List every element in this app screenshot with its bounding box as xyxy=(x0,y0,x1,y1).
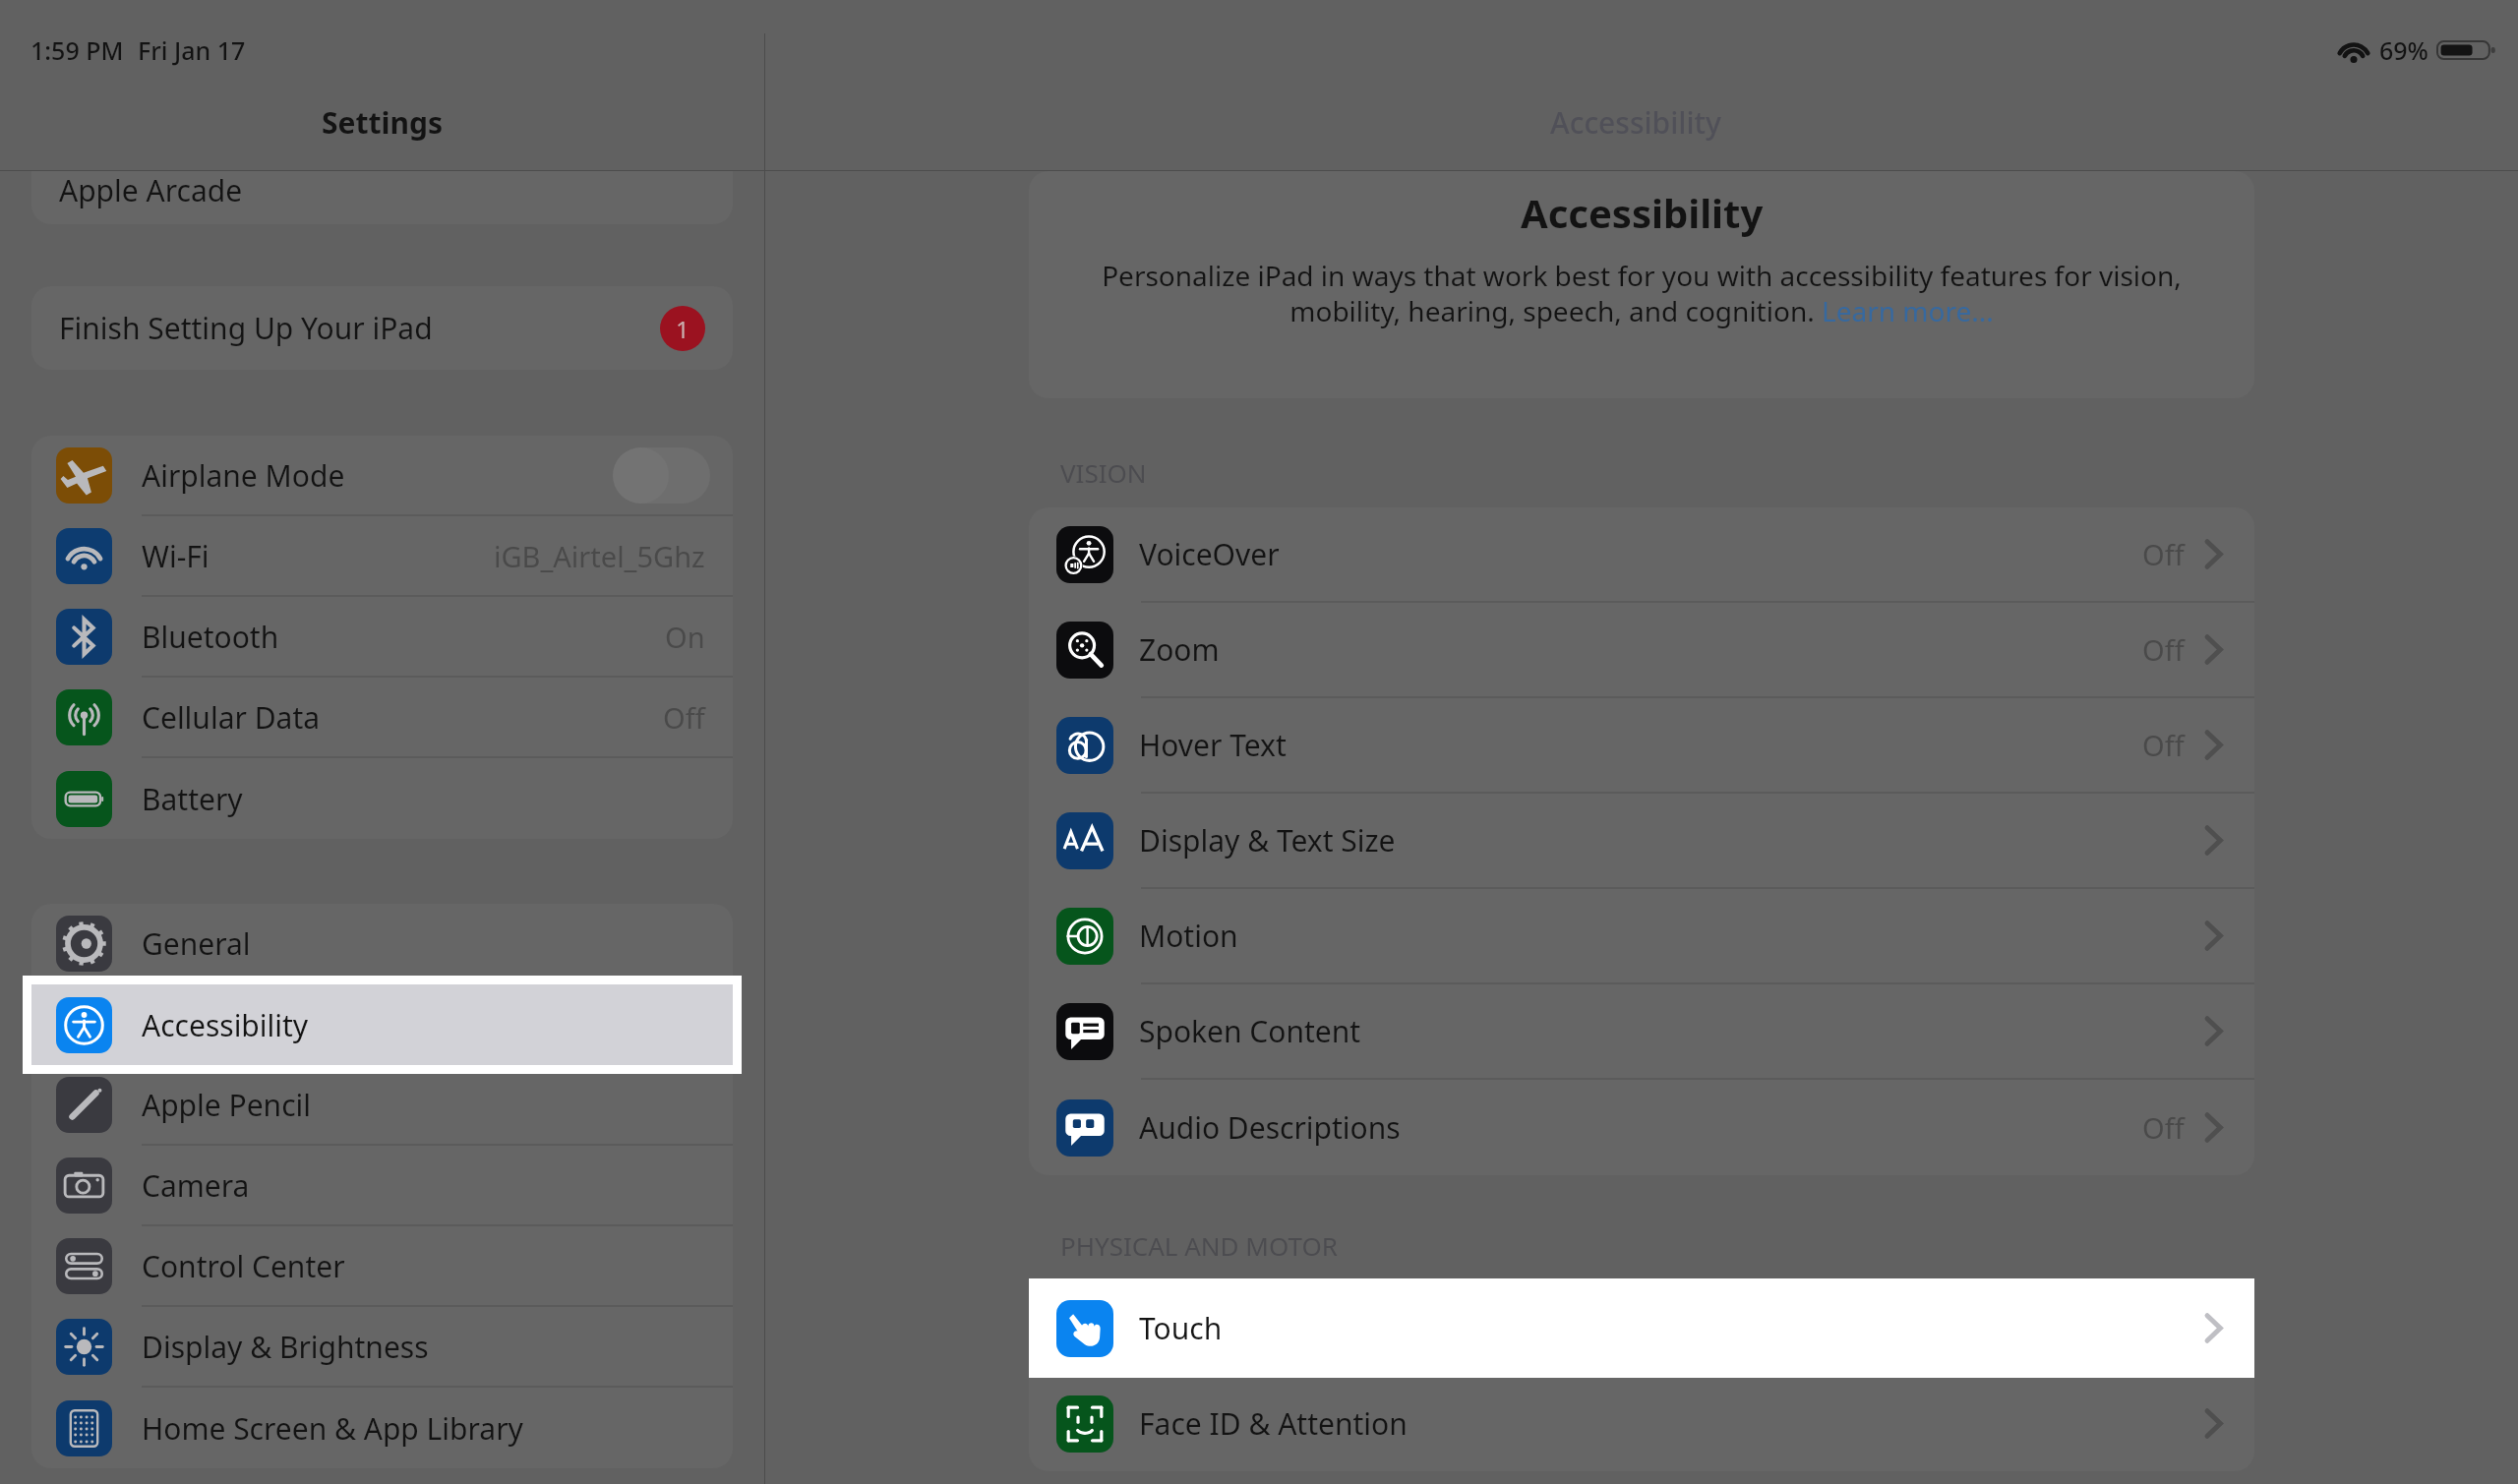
button[interactable]: Motion xyxy=(1029,889,2254,982)
button[interactable]: Wi-Fi xyxy=(31,516,733,595)
button[interactable]: Airplane Mode xyxy=(31,436,733,514)
button[interactable]: Apple Pencil xyxy=(31,1065,733,1144)
button[interactable]: Hover Text xyxy=(1029,698,2254,792)
button[interactable]: Finish Setting Up Your iPad xyxy=(31,286,733,370)
staticText: 1 xyxy=(676,313,689,345)
staticText: Camera xyxy=(142,1165,250,1206)
staticText: 69% xyxy=(2379,33,2428,67)
staticText: 1:59 PM xyxy=(30,33,124,67)
button[interactable]: Spoken Content xyxy=(1029,984,2254,1078)
other: Wi-Fi signal xyxy=(2336,37,2371,64)
staticText: VISION xyxy=(1060,455,1147,490)
button[interactable]: General xyxy=(31,904,733,982)
staticText: Wi-Fi xyxy=(142,536,210,576)
button[interactable]: Airplane Mode toggle xyxy=(613,447,710,504)
button[interactable]: Accessibility xyxy=(31,984,733,1065)
button[interactable]: Zoom xyxy=(1029,603,2254,696)
button[interactable]: Display & Text Size xyxy=(1029,794,2254,887)
staticText: Accessibility xyxy=(1550,102,1721,143)
button[interactable]: VoiceOver xyxy=(1029,507,2254,601)
staticText: Apple Pencil xyxy=(142,1085,312,1125)
button[interactable]: Control Center xyxy=(31,1226,733,1305)
staticText: iGB_Airtel_5Ghz xyxy=(494,537,705,575)
button[interactable]: Face ID & Attention xyxy=(1029,1376,2254,1471)
staticText: Zoom xyxy=(1139,629,1220,670)
staticText: Off xyxy=(2142,726,2185,764)
staticText: Battery xyxy=(142,779,243,819)
staticText: Display & Brightness xyxy=(142,1327,429,1367)
staticText: Accessibility xyxy=(1521,186,1764,239)
staticText: VoiceOver xyxy=(1139,534,1280,574)
staticText: Accessibility xyxy=(142,1005,309,1045)
staticText: Cellular Data xyxy=(142,697,321,738)
staticText: Off xyxy=(2142,535,2185,573)
staticText: Fri Jan 17 xyxy=(138,33,246,67)
staticText: Touch xyxy=(1139,1308,1223,1348)
staticText: Face ID & Attention xyxy=(1139,1403,1408,1444)
staticText: Off xyxy=(663,698,705,737)
staticText: Audio Descriptions xyxy=(1139,1107,1401,1148)
staticText: Settings xyxy=(322,102,443,143)
other: Battery 69 percent xyxy=(2437,36,2496,64)
button[interactable]: Bluetooth xyxy=(31,597,733,676)
staticText: Finish Setting Up Your iPad xyxy=(59,308,433,348)
staticText: Spoken Content xyxy=(1139,1011,1361,1051)
staticText: Off xyxy=(2142,630,2185,669)
staticText: Off xyxy=(2142,1108,2185,1147)
staticText: Control Center xyxy=(142,1246,345,1286)
staticText: General xyxy=(142,923,251,964)
staticText: Hover Text xyxy=(1139,725,1287,765)
button[interactable]: Home Screen & App Library xyxy=(31,1388,733,1468)
staticText: Personalize iPad in ways that work best … xyxy=(1076,257,2207,329)
staticText: Display & Text Size xyxy=(1139,820,1396,861)
button[interactable]: Audio Descriptions xyxy=(1029,1080,2254,1175)
button[interactable]: Cellular Data xyxy=(31,678,733,756)
button[interactable]: Touch xyxy=(1029,1280,2254,1376)
button[interactable]: Apple Arcade xyxy=(31,171,733,224)
button[interactable]: Battery xyxy=(31,758,733,839)
button[interactable]: Camera xyxy=(31,1146,733,1224)
staticText: Motion xyxy=(1139,916,1238,956)
staticText: Home Screen & App Library xyxy=(142,1408,523,1449)
staticText: Bluetooth xyxy=(142,617,279,657)
staticText: Airplane Mode xyxy=(142,455,345,496)
staticText: On xyxy=(665,618,705,656)
staticText: PHYSICAL AND MOTOR xyxy=(1060,1228,1338,1263)
staticText: Apple Arcade xyxy=(59,171,243,210)
button[interactable]: Display & Brightness xyxy=(31,1307,733,1386)
